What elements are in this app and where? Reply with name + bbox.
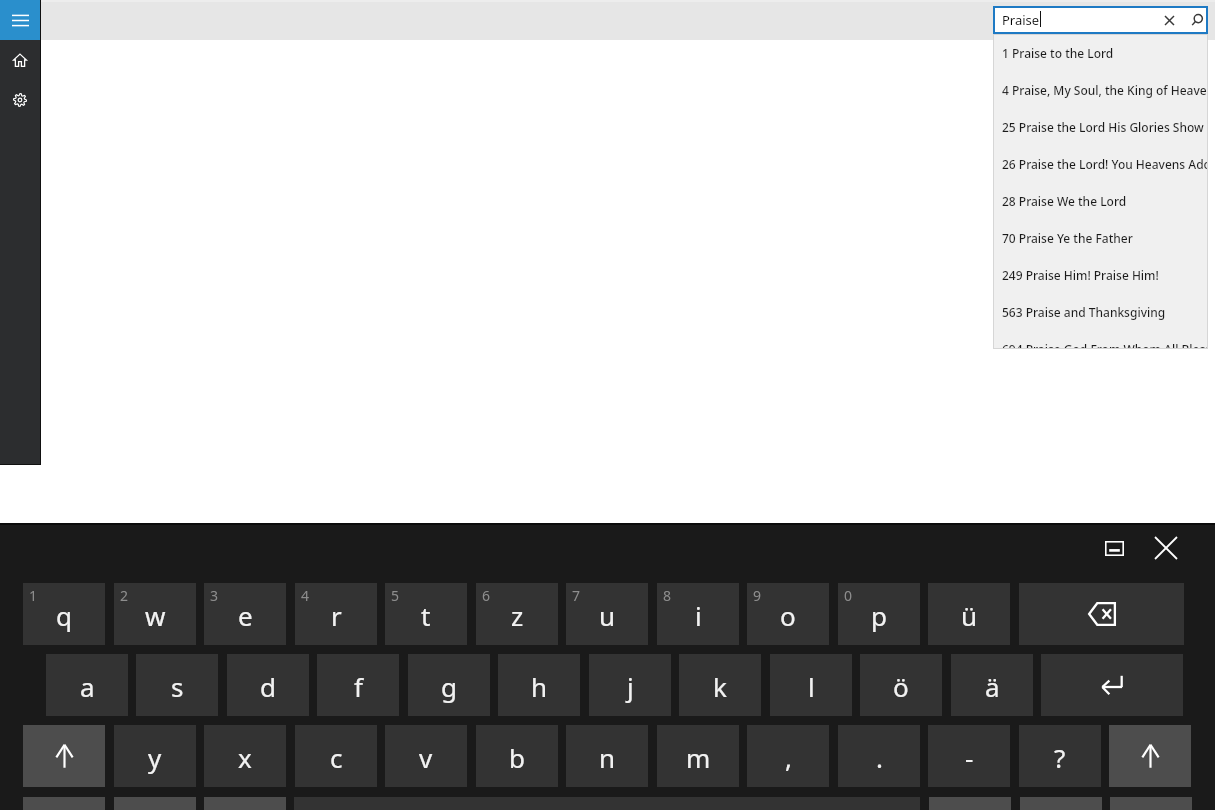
staticText: m (686, 740, 711, 775)
staticText: 249 Praise Him! Praise Him! (1002, 267, 1159, 283)
staticText: . (876, 740, 883, 775)
staticText: f (354, 669, 363, 704)
button[interactable]: b (476, 725, 558, 787)
button[interactable]: c (295, 725, 377, 787)
button[interactable]: 5 (385, 583, 467, 645)
button[interactable]: 4 Praise, My Soul, the King of Heaven (993, 71, 1208, 108)
button[interactable]: 25 Praise the Lord His Glories Show (993, 108, 1208, 145)
button[interactable]: Shift (23, 725, 105, 787)
staticText: k (713, 669, 727, 704)
button[interactable]: f (317, 654, 399, 716)
staticText: ä (985, 669, 1000, 704)
staticText: 2 (120, 586, 129, 605)
staticText: ö (893, 669, 909, 704)
staticText: j (627, 669, 634, 704)
staticText: q (56, 598, 72, 633)
staticText: 28 Praise We the Lord (1002, 193, 1127, 209)
staticText: g (441, 669, 457, 704)
button[interactable]: j (589, 654, 671, 716)
staticText: n (599, 740, 616, 775)
button[interactable]: 70 Praise Ye the Father (993, 219, 1208, 256)
button[interactable]: 1 (23, 583, 105, 645)
staticText: 9 (753, 586, 762, 605)
button[interactable]: d (227, 654, 309, 716)
staticText: p (871, 598, 887, 633)
button[interactable]: 694 Praise God From Whom All Blessings F… (993, 330, 1208, 349)
staticText: - (965, 740, 974, 775)
button[interactable]: 26 Praise the Lord! You Heavens Adore Hi… (993, 145, 1208, 182)
button[interactable]: Settings (0, 80, 40, 120)
staticText: u (599, 598, 616, 633)
staticText: 7 (572, 586, 581, 605)
staticText: Praise (1002, 11, 1040, 29)
button[interactable]: k (679, 654, 761, 716)
staticText: 694 Praise God From Whom All Blessings F… (1002, 341, 1208, 349)
button[interactable]: 563 Praise and Thanksgiving (993, 293, 1208, 330)
button[interactable]: Close keyboard (1152, 534, 1180, 562)
button[interactable]: - (928, 725, 1010, 787)
button[interactable]: 4 (295, 583, 377, 645)
button[interactable]: 3 (204, 583, 286, 645)
button[interactable]: Home (0, 40, 40, 80)
button[interactable]: ö (860, 654, 942, 716)
button[interactable]: Shift (1109, 725, 1191, 787)
button[interactable]: ü (928, 583, 1010, 645)
button[interactable]: s (136, 654, 218, 716)
staticText: c (330, 740, 343, 775)
button[interactable]: , (747, 725, 829, 787)
staticText: s (171, 669, 184, 704)
button[interactable]: Dock keyboard (1100, 534, 1128, 562)
button[interactable]: 2 (114, 583, 196, 645)
staticText: 3 (210, 586, 219, 605)
button[interactable]: h (498, 654, 580, 716)
staticText: 70 Praise Ye the Father (1002, 230, 1133, 246)
button[interactable]: ? (1019, 725, 1101, 787)
button[interactable]: a (46, 654, 128, 716)
button[interactable]: l (770, 654, 852, 716)
button[interactable]: Search (1185, 8, 1209, 32)
staticText: ? (1054, 740, 1066, 775)
staticText: 0 (844, 586, 853, 605)
staticText: y (148, 740, 162, 775)
button[interactable]: 6 (476, 583, 558, 645)
button[interactable]: 0 (838, 583, 920, 645)
button[interactable]: 249 Praise Him! Praise Him! (993, 256, 1208, 293)
staticText: v (419, 740, 433, 775)
button[interactable]: v (385, 725, 467, 787)
button[interactable]: m (657, 725, 739, 787)
button[interactable]: 1 Praise to the Lord (993, 34, 1208, 71)
staticText: d (260, 669, 276, 704)
staticText: 4 (301, 586, 310, 605)
staticText: a (80, 669, 95, 704)
staticText: e (238, 598, 253, 633)
staticText: 25 Praise the Lord His Glories Show (1002, 119, 1204, 135)
staticText: o (780, 598, 796, 633)
staticText: b (509, 740, 525, 775)
button[interactable]: x (204, 725, 286, 787)
button[interactable]: 8 (657, 583, 739, 645)
button[interactable]: . (838, 725, 920, 787)
button[interactable]: Backspace (1019, 583, 1184, 645)
button[interactable]: Clear (1157, 8, 1181, 32)
staticText: , (785, 740, 792, 775)
staticText: t (421, 598, 431, 633)
button[interactable]: 7 (566, 583, 648, 645)
button[interactable]: 9 (747, 583, 829, 645)
button[interactable]: n (566, 725, 648, 787)
staticText: i (695, 598, 702, 633)
button[interactable]: g (408, 654, 490, 716)
staticText: 4 Praise, My Soul, the King of Heaven (1002, 82, 1208, 98)
button[interactable]: Menu (0, 0, 40, 40)
button[interactable]: 28 Praise We the Lord (993, 182, 1208, 219)
button[interactable]: ä (951, 654, 1033, 716)
staticText: l (808, 669, 815, 704)
button[interactable]: Enter (1041, 654, 1183, 716)
button[interactable]: y (114, 725, 196, 787)
